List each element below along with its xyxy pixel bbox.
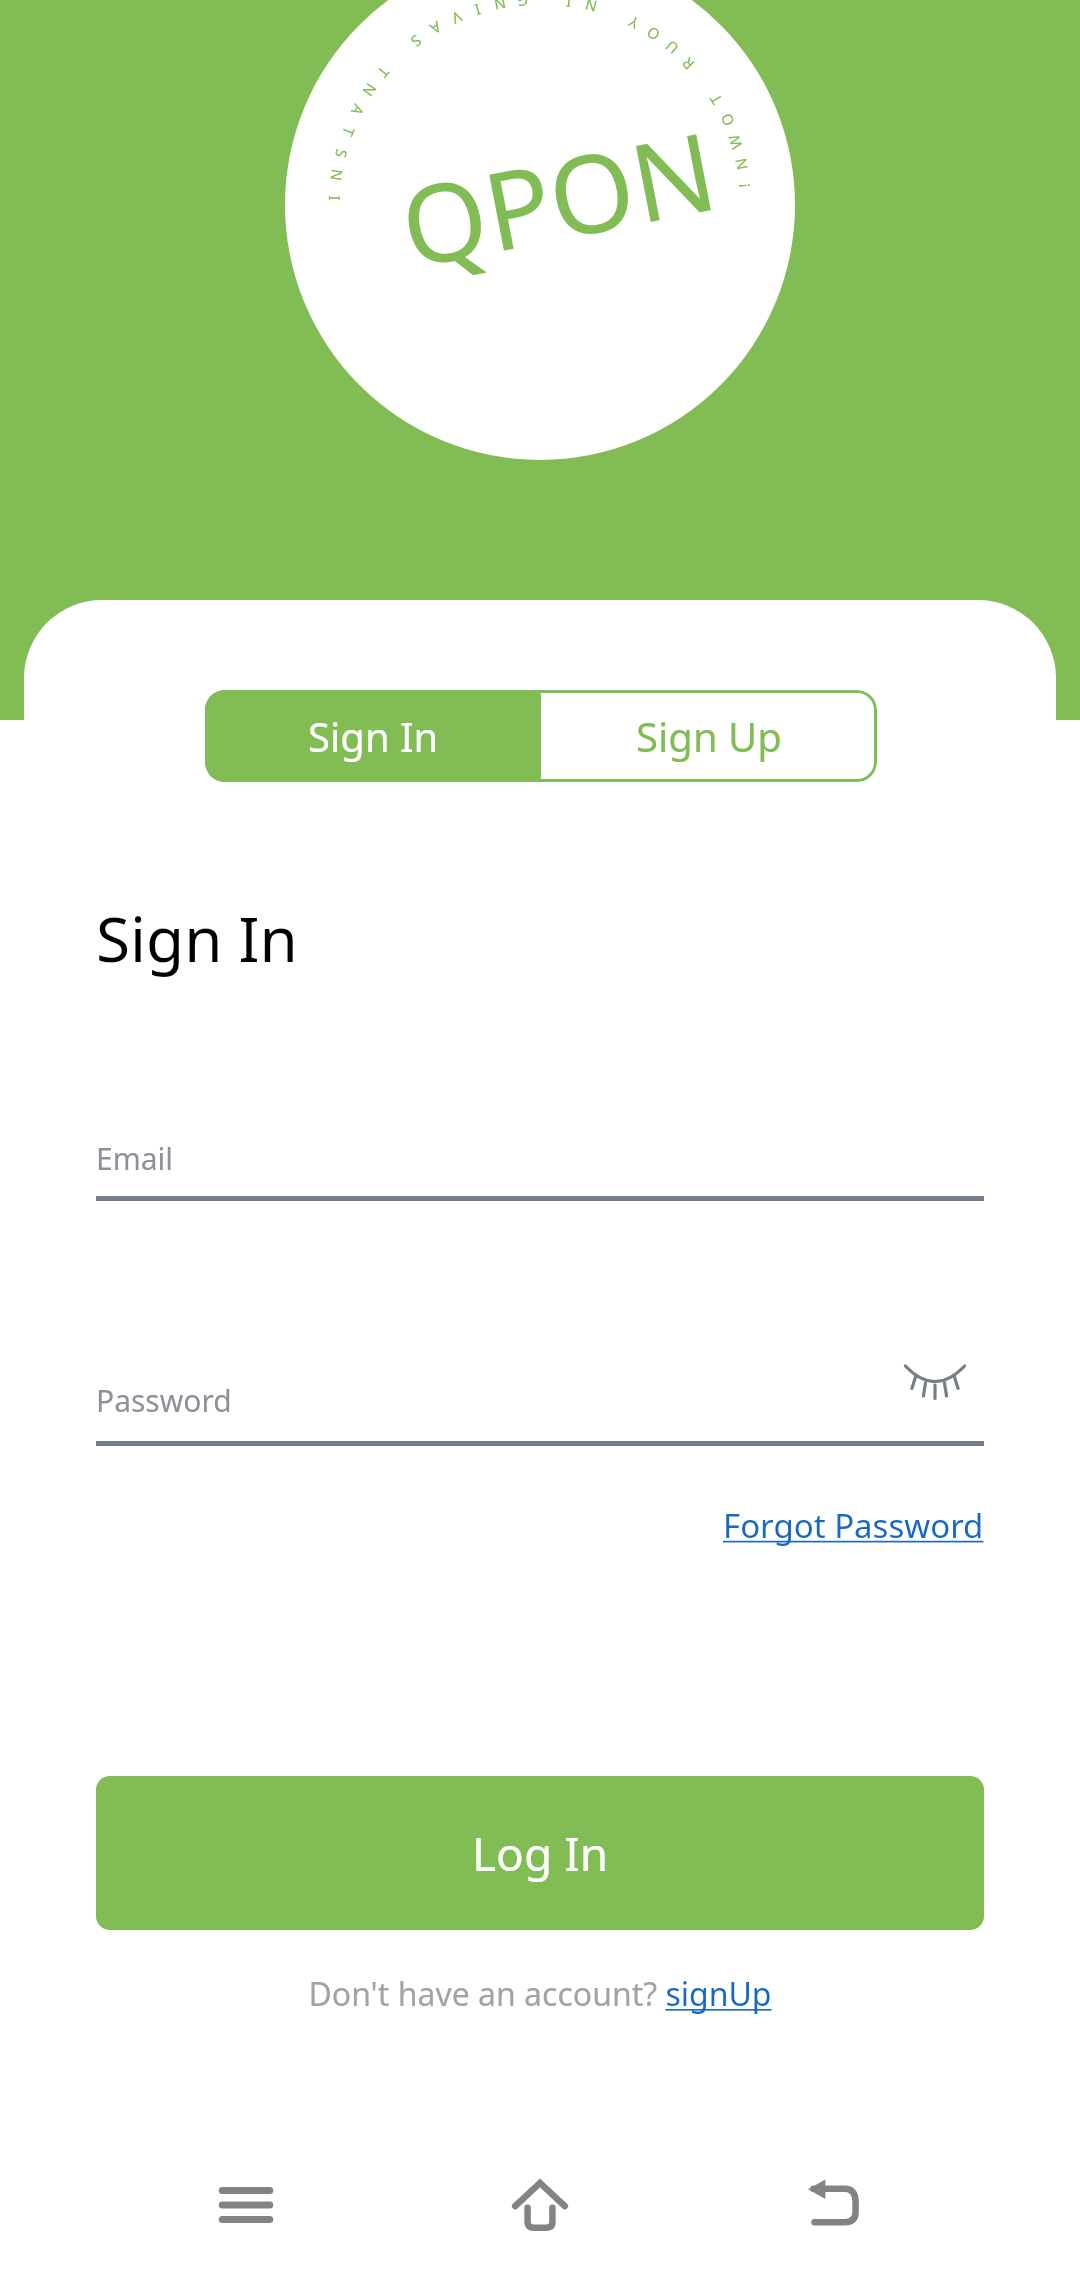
staticText: R [677,53,699,74]
staticText: I [472,0,484,20]
staticText: Email [96,1138,174,1179]
button[interactable]: Menu [198,2157,294,2253]
staticText: T [705,91,727,109]
staticText: T [338,124,360,139]
staticText: W [723,132,747,152]
button[interactable]: Back [786,2157,882,2253]
staticText: O [715,110,739,130]
staticText: Log In [472,1822,609,1885]
staticText: Don't have an account? signUp [308,1972,772,2016]
staticText: Forgot Password [723,1503,984,1548]
button[interactable]: Don't have an account? signUp [308,1972,772,2016]
staticText: N [492,0,508,15]
button[interactable]: Sign In [205,690,541,782]
staticText: Sign In [308,709,439,763]
staticText: ! [734,182,754,189]
staticText: S [331,147,353,160]
staticText: Y [625,12,642,34]
staticText: Password [96,1380,232,1421]
staticText: N [326,168,348,182]
staticText: N [358,79,382,100]
staticText: N [583,0,599,17]
button[interactable]: Sign Up [541,690,877,782]
staticText: G [516,0,529,11]
staticText: T [373,62,394,82]
staticText: U [661,36,682,59]
staticText: A [347,101,369,119]
staticText: I [325,195,345,201]
button[interactable]: Show password [898,1348,972,1408]
staticText: Sign Up [636,709,782,763]
button[interactable]: Home [492,2157,588,2253]
button[interactable]: Forgot Password [723,1503,984,1548]
staticText: V [448,7,466,29]
staticText: N [730,156,752,172]
staticText: QPON [389,95,728,300]
staticText: S [407,31,426,52]
staticText: I [565,0,573,12]
button[interactable]: Log In [96,1776,984,1930]
staticText: O [642,22,664,46]
staticText: Sign In [96,896,298,980]
staticText: A [427,17,445,39]
